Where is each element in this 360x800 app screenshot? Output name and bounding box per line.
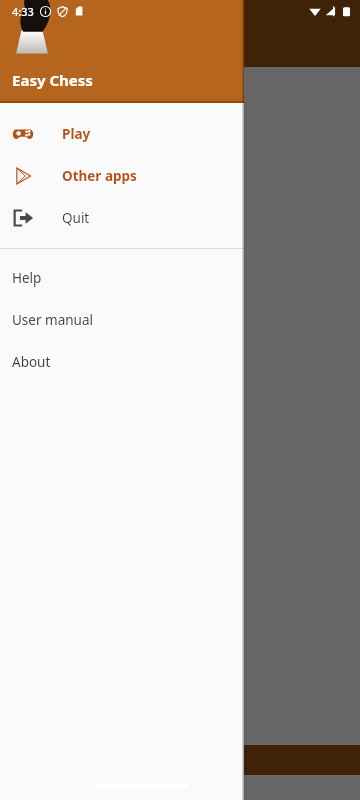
staticText: User manual <box>12 311 93 329</box>
button[interactable]: Help <box>0 257 244 299</box>
staticText: Quit <box>62 209 90 227</box>
staticText: Help <box>12 269 42 287</box>
staticText: Other apps <box>62 167 137 185</box>
button[interactable]: User manual <box>0 299 244 341</box>
button[interactable]: Quit <box>0 197 244 239</box>
staticText: About <box>12 353 51 371</box>
staticText: 4:33 <box>12 4 34 19</box>
button[interactable]: About <box>0 341 244 383</box>
staticText: Easy Chess <box>12 70 93 90</box>
button[interactable]: Other apps <box>0 155 244 197</box>
button[interactable]: Play <box>0 113 244 155</box>
staticText: Play <box>62 125 91 143</box>
